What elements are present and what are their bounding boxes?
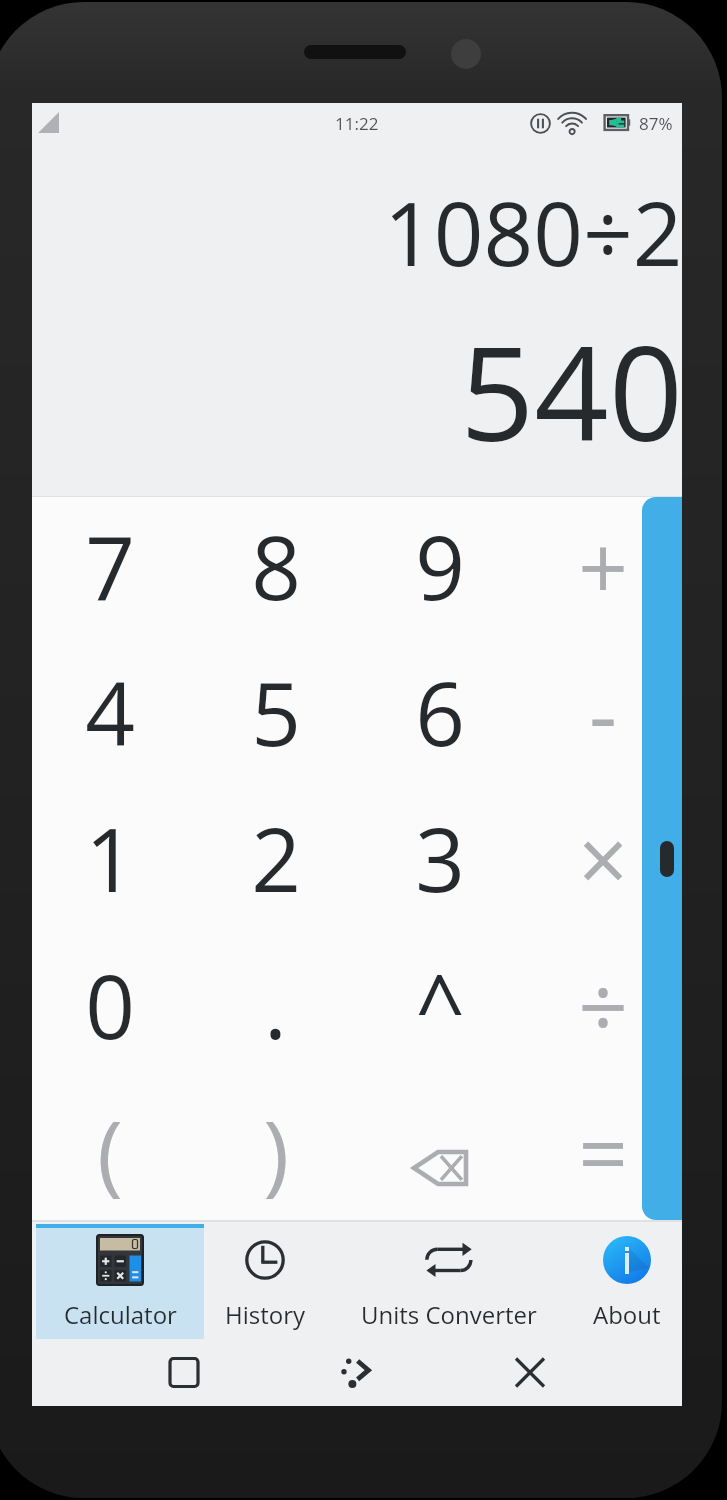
staticText: 0 (85, 946, 135, 1064)
staticText: 11:22 (335, 112, 379, 135)
staticText: ) (263, 1092, 289, 1210)
staticText: 1 (85, 799, 135, 917)
button[interactable]: 3 (358, 785, 521, 931)
staticText: ( (97, 1092, 123, 1210)
staticText: ÷ (578, 946, 628, 1064)
staticText: About (593, 1298, 661, 1331)
staticText: . (264, 946, 287, 1064)
staticText: 5 (251, 653, 301, 771)
staticText: ^ (415, 946, 465, 1064)
button[interactable]: - (521, 639, 684, 785)
button[interactable]: 7 (28, 493, 191, 639)
button[interactable]: ^ (358, 932, 521, 1078)
staticText: 540 (460, 302, 683, 479)
button[interactable]: 4 (28, 639, 191, 785)
button[interactable]: 0 (28, 932, 191, 1078)
button[interactable]: Home (322, 1339, 390, 1406)
button[interactable]: + (521, 493, 684, 639)
button[interactable]: Close (496, 1339, 564, 1406)
staticText: 2 (251, 799, 301, 917)
button[interactable]: About (572, 1222, 682, 1342)
staticText: - (589, 653, 617, 771)
staticText: = (578, 1092, 628, 1210)
button[interactable]: × (521, 785, 684, 931)
staticText: 8 (251, 507, 301, 625)
button[interactable]: ( (28, 1078, 191, 1224)
button[interactable]: . (194, 932, 357, 1078)
staticText: Units Converter (361, 1298, 537, 1331)
button[interactable]: Units Converter (326, 1222, 572, 1342)
button[interactable]: ) (194, 1078, 357, 1224)
staticText: + (578, 507, 628, 625)
button[interactable]: = (521, 1078, 684, 1224)
button[interactable]: 8 (194, 493, 357, 639)
staticText: 1080÷2 (384, 173, 683, 291)
staticText: × (578, 799, 628, 917)
button[interactable]: Resize keypad (642, 497, 682, 1220)
other: Backspace (408, 1146, 472, 1190)
staticText: History (225, 1298, 306, 1331)
button[interactable]: Recents (150, 1339, 218, 1406)
staticText: Calculator (64, 1298, 177, 1331)
button[interactable]: Backspace (358, 1078, 521, 1224)
button[interactable]: History (204, 1222, 326, 1342)
button[interactable]: 2 (194, 785, 357, 931)
button[interactable]: 5 (194, 639, 357, 785)
staticText: 3 (415, 799, 465, 917)
button[interactable]: 6 (358, 639, 521, 785)
staticText: 9 (415, 507, 465, 625)
button[interactable]: 9 (358, 493, 521, 639)
staticText: 4 (85, 653, 135, 771)
staticText: 6 (415, 653, 465, 771)
button[interactable]: Calculator (36, 1222, 204, 1342)
button[interactable]: ÷ (521, 932, 684, 1078)
staticText: 7 (85, 507, 135, 625)
staticText: 87% (639, 112, 673, 135)
button[interactable]: 1 (28, 785, 191, 931)
